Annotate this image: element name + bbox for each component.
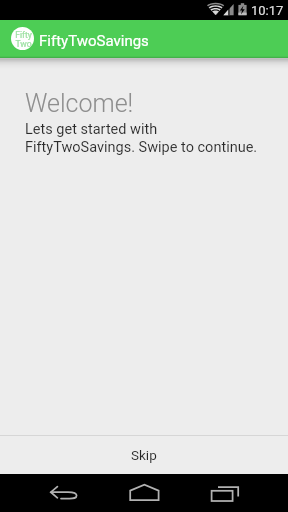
button[interactable]: Home	[96, 474, 192, 512]
staticText: Lets get started with FiftyTwoSavings. S…	[25, 121, 258, 155]
staticText: FiftyTwoSavings	[39, 32, 149, 50]
staticText: Skip	[131, 447, 157, 463]
button[interactable]: Skip	[0, 436, 288, 474]
button[interactable]: Recent apps	[192, 474, 288, 512]
staticText: Welcome!	[25, 89, 134, 118]
staticText: Fifty Two	[15, 30, 32, 49]
button[interactable]: Fifty Two	[0, 20, 288, 58]
staticText: 10:17	[251, 3, 284, 18]
button[interactable]: Back	[0, 474, 96, 512]
